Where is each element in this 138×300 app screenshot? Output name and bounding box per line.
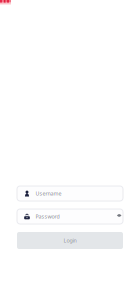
button[interactable]: Password — [17, 209, 123, 224]
button[interactable]: Username — [17, 186, 123, 201]
staticText: Username — [35, 190, 61, 197]
button[interactable]: Login — [17, 232, 123, 249]
staticText: Login — [63, 237, 76, 244]
staticText: Password — [35, 213, 59, 220]
